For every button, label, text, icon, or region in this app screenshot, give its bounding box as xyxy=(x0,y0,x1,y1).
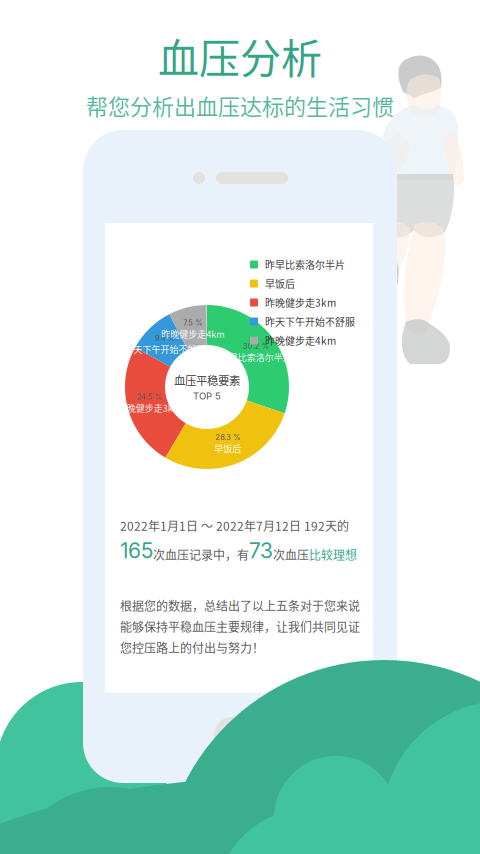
staticText: 28.3 % xyxy=(215,433,240,442)
staticText: 73 xyxy=(249,538,273,563)
staticText: 昨天下午开始不舒服 xyxy=(265,314,355,329)
staticText: 9.4 % xyxy=(155,333,175,342)
staticText: 比较理想 xyxy=(309,546,357,563)
staticText: 30.2 % xyxy=(243,341,269,350)
staticText: 2022年1月1日 ～ 2022年7月12日 192天的 xyxy=(120,517,349,534)
staticText: 7.5 % xyxy=(183,318,202,327)
staticText: TOP 5 xyxy=(193,390,221,402)
staticText: 早饭后 xyxy=(214,442,241,455)
staticText: 早饭后 xyxy=(265,276,295,291)
staticText: 帮您分析出血压达标的生活习惯 xyxy=(86,89,394,121)
staticText: 根据您的数据，总结出了以上五条对于您来说 xyxy=(120,597,360,614)
staticText: 昨晚健步走4km xyxy=(161,327,224,340)
staticText: 血压分析 xyxy=(158,26,322,85)
staticText: 次血压 xyxy=(273,546,309,563)
staticText: 昨晚健步走3km xyxy=(265,295,336,310)
staticText: 次血压记录中，有 xyxy=(153,546,249,563)
staticText: 您控压路上的付出与努力！ xyxy=(120,639,264,656)
staticText: 能够保持平稳血压主要规律，让我们共同见证 xyxy=(120,618,360,635)
staticText: 昨早比索洛尔半片 xyxy=(265,257,345,272)
staticText: 昨晚健步走4km xyxy=(265,333,336,348)
staticText: 血压平稳要素 xyxy=(174,372,240,388)
staticText: 昨晚健步走3km xyxy=(118,401,181,414)
staticText: 165 xyxy=(120,538,153,563)
staticText: 昨早比索洛尔半片 xyxy=(220,350,292,364)
staticText: 昨天下午开始不舒服 xyxy=(125,342,206,356)
staticText: 24.5 % xyxy=(137,392,162,401)
